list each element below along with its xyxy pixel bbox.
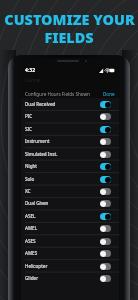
button[interactable]: Helicopter (21, 260, 119, 272)
button[interactable]: Toggle (100, 138, 111, 145)
staticText: SIC (25, 126, 32, 132)
button[interactable]: Toggle (100, 151, 111, 158)
button[interactable]: Toggle (100, 176, 111, 183)
staticText: Helicopter (25, 263, 48, 269)
button[interactable]: ASEL (21, 210, 119, 222)
staticText: Simulated Inst. (25, 151, 58, 157)
staticText: PIC (25, 113, 33, 119)
button[interactable]: PIC (21, 110, 119, 122)
button[interactable]: Toggle (100, 126, 111, 133)
button[interactable]: Dual Given (21, 197, 119, 209)
staticText: Dual Given (25, 200, 49, 206)
button[interactable]: Cancel (25, 77, 41, 84)
staticText: Solo (25, 176, 35, 182)
button[interactable]: Toggle (100, 263, 111, 270)
button[interactable]: Glider (21, 272, 119, 284)
staticText: AMES (25, 250, 38, 256)
button[interactable]: Toggle (100, 188, 111, 195)
staticText: Night (25, 163, 37, 169)
staticText: CUSTOMIZE YOUR (4, 10, 135, 30)
staticText: Instrument (25, 138, 50, 144)
staticText: Glider (25, 275, 39, 281)
button[interactable]: Toggle (100, 275, 111, 282)
button[interactable]: Simulated Inst. (21, 148, 119, 160)
button[interactable]: SIC (21, 123, 119, 135)
button[interactable]: Night (21, 160, 119, 172)
button[interactable]: Toggle (100, 101, 111, 108)
staticText: 4:32 (25, 67, 35, 74)
staticText: ASEL (25, 213, 36, 219)
staticText: XC (25, 188, 31, 194)
staticText: ASES (25, 238, 36, 244)
button[interactable]: AMES (21, 247, 119, 259)
staticText: Dual Received (25, 101, 56, 107)
staticText: FIELDS (44, 28, 94, 48)
button[interactable]: Done (103, 91, 115, 97)
button[interactable]: Toggle (100, 113, 111, 120)
staticText: Configure Hours Fields Shown (25, 91, 90, 97)
button[interactable]: Toggle (100, 200, 111, 207)
button[interactable]: XC (21, 185, 119, 197)
button[interactable]: Toggle (100, 225, 111, 232)
button[interactable]: Solo (21, 173, 119, 185)
button[interactable]: Toggle (100, 238, 111, 245)
button[interactable]: AMEL (21, 222, 119, 234)
button[interactable]: Toggle (100, 213, 111, 220)
button[interactable]: ASES (21, 235, 119, 247)
button[interactable]: Toggle (100, 163, 111, 170)
button[interactable]: Dual Received (21, 98, 119, 110)
staticText: AMEL (25, 225, 38, 231)
button[interactable]: Toggle (100, 250, 111, 257)
button[interactable]: Instrument (21, 135, 119, 147)
